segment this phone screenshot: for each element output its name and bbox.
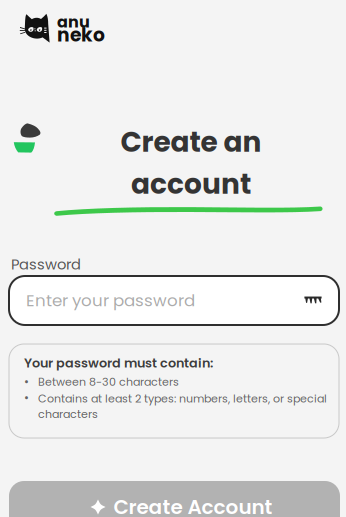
button[interactable]: Show password <box>300 287 326 313</box>
staticText: neko <box>57 22 105 48</box>
staticText: Between 8-30 characters <box>38 374 179 390</box>
staticText: Password <box>11 254 81 274</box>
staticText: Create an <box>120 122 261 162</box>
staticText: • <box>24 390 29 406</box>
staticText: Enter your password <box>26 289 195 312</box>
staticText: • <box>24 374 29 390</box>
staticText: Contains at least 2 types: numbers, lett… <box>38 391 327 422</box>
staticText: anu <box>57 11 90 33</box>
staticText: Create Account <box>113 493 272 517</box>
staticText: Your password must contain: <box>24 354 213 372</box>
staticText: account <box>131 164 251 204</box>
button[interactable]: Create Account <box>9 481 340 517</box>
